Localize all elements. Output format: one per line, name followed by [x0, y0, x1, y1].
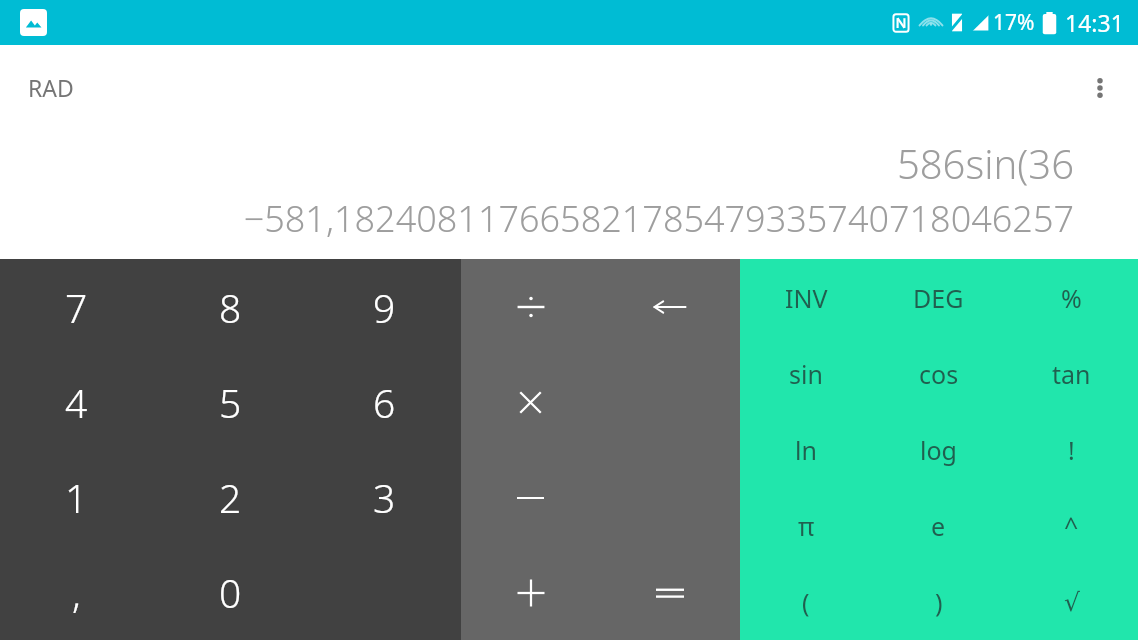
button[interactable]: 2	[153, 450, 307, 545]
staticText: (	[802, 585, 810, 619]
button[interactable]: (	[740, 564, 872, 640]
staticText: e	[931, 509, 946, 543]
staticText: 4	[65, 376, 88, 429]
button[interactable]: log	[872, 412, 1005, 488]
button[interactable]: ,	[0, 545, 153, 640]
button[interactable]: !	[1005, 412, 1138, 488]
button[interactable]: ln	[740, 412, 872, 488]
button[interactable]: Multiply	[461, 355, 600, 450]
staticText: 0	[219, 566, 242, 619]
staticText: log	[920, 433, 957, 467]
staticText: √	[1064, 588, 1080, 617]
staticText: 9	[373, 281, 396, 334]
button[interactable]: cos	[872, 336, 1005, 412]
button[interactable]: INV	[740, 259, 872, 336]
staticText: 1	[65, 471, 88, 524]
staticText: ^	[1064, 509, 1079, 543]
staticText: 5	[219, 376, 242, 429]
button[interactable]: sin	[740, 336, 872, 412]
button[interactable]: e	[872, 488, 1005, 564]
button[interactable]: Equals	[600, 545, 740, 640]
staticText: 8	[219, 281, 242, 334]
staticText: 586sin(36	[896, 136, 1074, 190]
staticText: 2	[219, 471, 242, 524]
button[interactable]: √	[1005, 564, 1138, 640]
button[interactable]: 0	[153, 545, 307, 640]
staticText: 17%	[993, 8, 1035, 37]
button[interactable]: 6	[307, 355, 461, 450]
staticText: −581,18240811766582178547933574071804625…	[243, 194, 1074, 243]
staticText: 14:31	[1065, 7, 1124, 38]
staticText: )	[935, 585, 943, 619]
staticText: ,	[72, 566, 81, 619]
button[interactable]: Backspace	[600, 259, 740, 355]
staticText: RAD	[28, 72, 74, 103]
button[interactable]: RAD	[12, 62, 90, 113]
staticText: DEG	[913, 281, 964, 315]
button[interactable]: %	[1005, 259, 1138, 336]
button[interactable]: 1	[0, 450, 153, 545]
button[interactable]: 5	[153, 355, 307, 450]
button[interactable]: 9	[307, 259, 461, 355]
staticText: %	[1061, 281, 1082, 315]
button[interactable]: 3	[307, 450, 461, 545]
staticText: cos	[919, 357, 959, 391]
staticText: INV	[785, 281, 828, 315]
staticText: 7	[65, 281, 88, 334]
staticText: !	[1068, 433, 1075, 467]
staticText: tan	[1052, 357, 1091, 391]
button[interactable]: 4	[0, 355, 153, 450]
staticText: sin	[789, 357, 823, 391]
button[interactable]: )	[872, 564, 1005, 640]
staticText: 3	[373, 471, 396, 524]
staticText: ln	[795, 433, 817, 467]
staticText: 6	[373, 376, 396, 429]
staticText: π	[798, 509, 815, 543]
button[interactable]: π	[740, 488, 872, 564]
button[interactable]: ^	[1005, 488, 1138, 564]
button[interactable]: More options	[1072, 60, 1128, 116]
button[interactable]: tan	[1005, 336, 1138, 412]
button[interactable]: 7	[0, 259, 153, 355]
button[interactable]: 8	[153, 259, 307, 355]
button[interactable]: Minus	[461, 450, 600, 545]
button[interactable]: Divide	[461, 259, 600, 355]
button[interactable]: DEG	[872, 259, 1005, 336]
button[interactable]: Plus	[461, 545, 600, 640]
